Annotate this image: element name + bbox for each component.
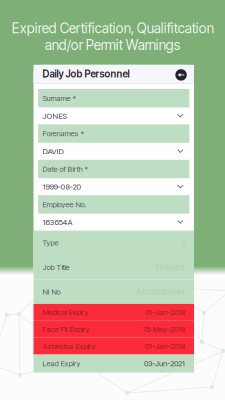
staticText: NI No [42,287,60,296]
staticText: 163654A [42,217,72,227]
staticText: 03-Jun-2021 [144,359,185,368]
staticText: Date of Birth * [42,164,87,174]
staticText: Surname * [42,94,75,103]
staticText: AA1231315494 [136,287,185,296]
staticText: Face Fit Expiry [42,325,89,334]
staticText: JONES [42,111,67,121]
staticText: 01-Jan-2018 [145,342,185,351]
staticText: Forenames * [42,129,83,138]
staticText: Lead Expiry [42,359,80,368]
staticText: 15-May-2018 [143,325,185,334]
staticText: Medical Expiry [42,308,88,317]
staticText: 1999-08-20 [42,182,81,191]
staticText: Type [42,238,58,247]
staticText: 01-Jan-2018 [145,308,185,317]
staticText: Daily Job Personnel [42,68,129,80]
staticText: S [181,238,185,247]
staticText: Expired Certification, Qualifitcation an… [11,20,213,53]
staticText: Employee No. [42,200,86,209]
staticText: TRAINEE [155,263,185,272]
button[interactable]: Daily Job Personnel — back [33,65,194,83]
staticText: DAVID [42,146,63,156]
staticText: Job Title [42,263,69,272]
staticText: Asbestos Expiry [42,342,95,351]
